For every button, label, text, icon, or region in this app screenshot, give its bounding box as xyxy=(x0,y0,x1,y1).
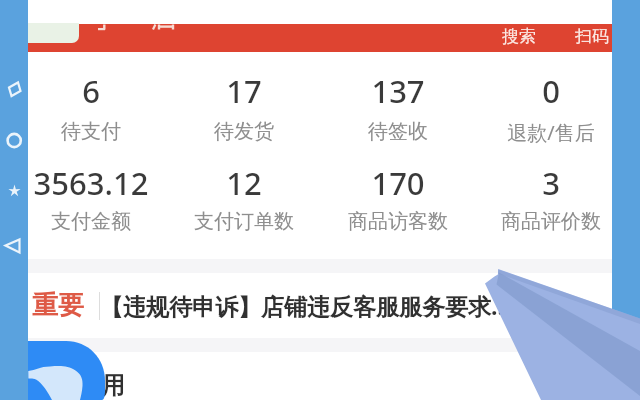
button[interactable] xyxy=(322,162,474,242)
staticText: 12 xyxy=(94,162,394,204)
button[interactable] xyxy=(15,70,167,150)
staticText: 重要 xyxy=(32,289,84,322)
button[interactable] xyxy=(475,70,627,150)
staticText: 扫码 xyxy=(575,26,609,47)
staticText: 商品访客数 xyxy=(248,209,548,234)
button[interactable]: 搜索 xyxy=(497,24,541,50)
button[interactable] xyxy=(15,162,167,242)
staticText: 支付订单数 xyxy=(94,209,394,234)
button[interactable] xyxy=(168,70,320,150)
staticText: 【违规待申诉】店铺违反客服服务要求.. xyxy=(100,290,504,321)
button[interactable] xyxy=(322,70,474,150)
staticText: 待发货 xyxy=(94,119,394,144)
staticText: 待支付 xyxy=(0,119,241,144)
staticText: 搜索 xyxy=(502,26,536,47)
button[interactable] xyxy=(168,162,320,242)
staticText: 待签收 xyxy=(248,119,548,144)
button[interactable]: 扫码 xyxy=(570,24,612,50)
staticText: 商品评价数 xyxy=(401,209,640,234)
staticText: 支付金额 xyxy=(0,209,241,234)
staticText: 0 xyxy=(401,70,640,112)
staticText: 退款/售后 xyxy=(401,119,640,146)
staticText: 3563.12 xyxy=(0,162,241,204)
staticText: 170 xyxy=(248,162,548,204)
staticText: 6 xyxy=(0,70,241,112)
button[interactable] xyxy=(475,162,627,242)
staticText: 17 xyxy=(94,70,394,112)
staticText: 用 xyxy=(102,371,125,400)
button[interactable]: 重要 xyxy=(28,273,612,338)
staticText: 137 xyxy=(248,70,548,112)
staticText: 3 xyxy=(401,162,640,204)
